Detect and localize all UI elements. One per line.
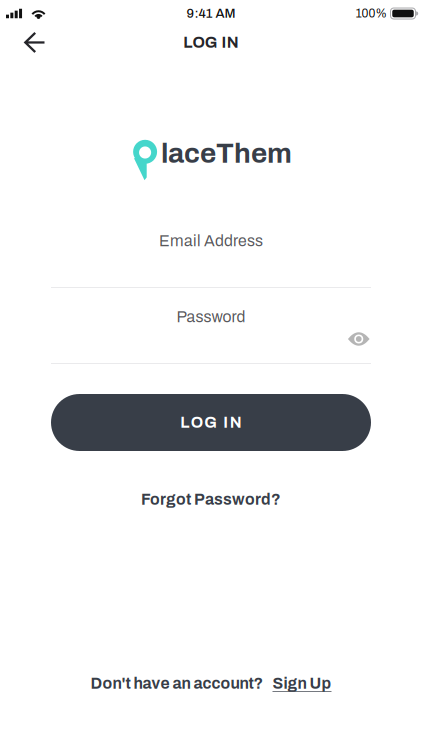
staticText: 100% [355,7,386,20]
staticText: Password [176,308,245,325]
button[interactable]: Sign Up [272,675,331,692]
staticText: Email Address [159,232,263,249]
staticText: LOG IN [183,34,239,51]
staticText: Sign Up [272,675,331,692]
staticText: laceThem [161,138,292,169]
button[interactable]: Back [0,22,61,63]
staticText: Forgot Password? [141,491,281,508]
staticText: 9:41 AM [186,6,235,21]
button[interactable]: Forgot Password? [131,487,291,512]
staticText: Don't have an account? [90,675,263,692]
button[interactable]: Show password [346,327,371,351]
staticText: LOG IN [180,414,242,431]
button[interactable]: LOG IN [51,394,371,451]
